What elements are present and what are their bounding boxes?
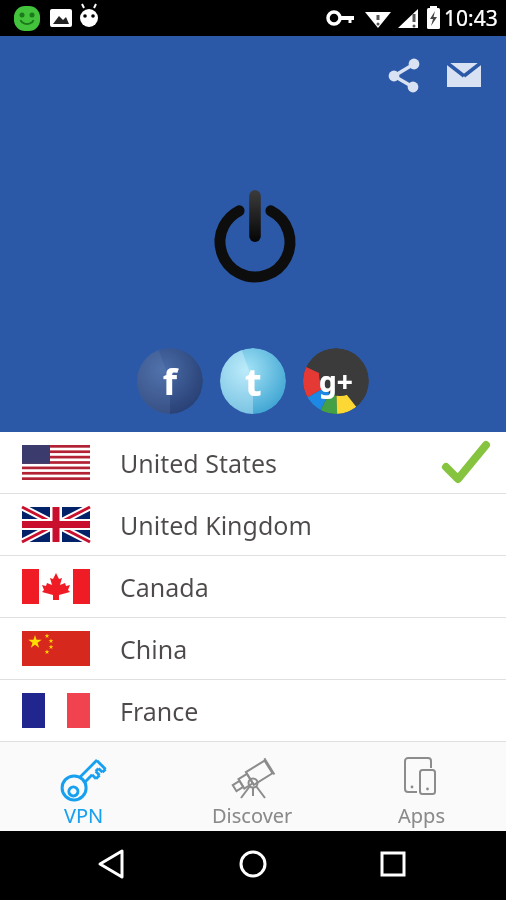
button[interactable]: g+ (303, 348, 369, 414)
staticText: VPN (64, 802, 104, 829)
staticText: France (120, 694, 199, 728)
staticText: g+ (319, 362, 353, 400)
staticText: Canada (120, 570, 209, 604)
button[interactable]: t (220, 348, 286, 414)
button[interactable]: Apps (337, 742, 506, 831)
staticText: Apps (398, 802, 445, 829)
staticText: China (120, 632, 188, 666)
staticText: f (163, 357, 177, 406)
staticText: United Kingdom (120, 508, 312, 542)
button[interactable]: United Kingdom (0, 494, 506, 555)
button[interactable]: f (137, 348, 203, 414)
button[interactable]: Canada (0, 556, 506, 617)
button[interactable] (382, 53, 426, 97)
button[interactable]: France (0, 680, 506, 741)
staticText: t (245, 355, 262, 407)
button[interactable]: China (0, 618, 506, 679)
button[interactable]: Discover (168, 742, 337, 831)
staticText: 10:43 (444, 4, 498, 33)
staticText: Discover (212, 802, 293, 829)
staticText: United States (120, 446, 278, 480)
button[interactable] (442, 53, 486, 97)
button[interactable]: United States (0, 432, 506, 493)
button[interactable]: VPN (0, 742, 168, 831)
button[interactable] (204, 186, 304, 286)
